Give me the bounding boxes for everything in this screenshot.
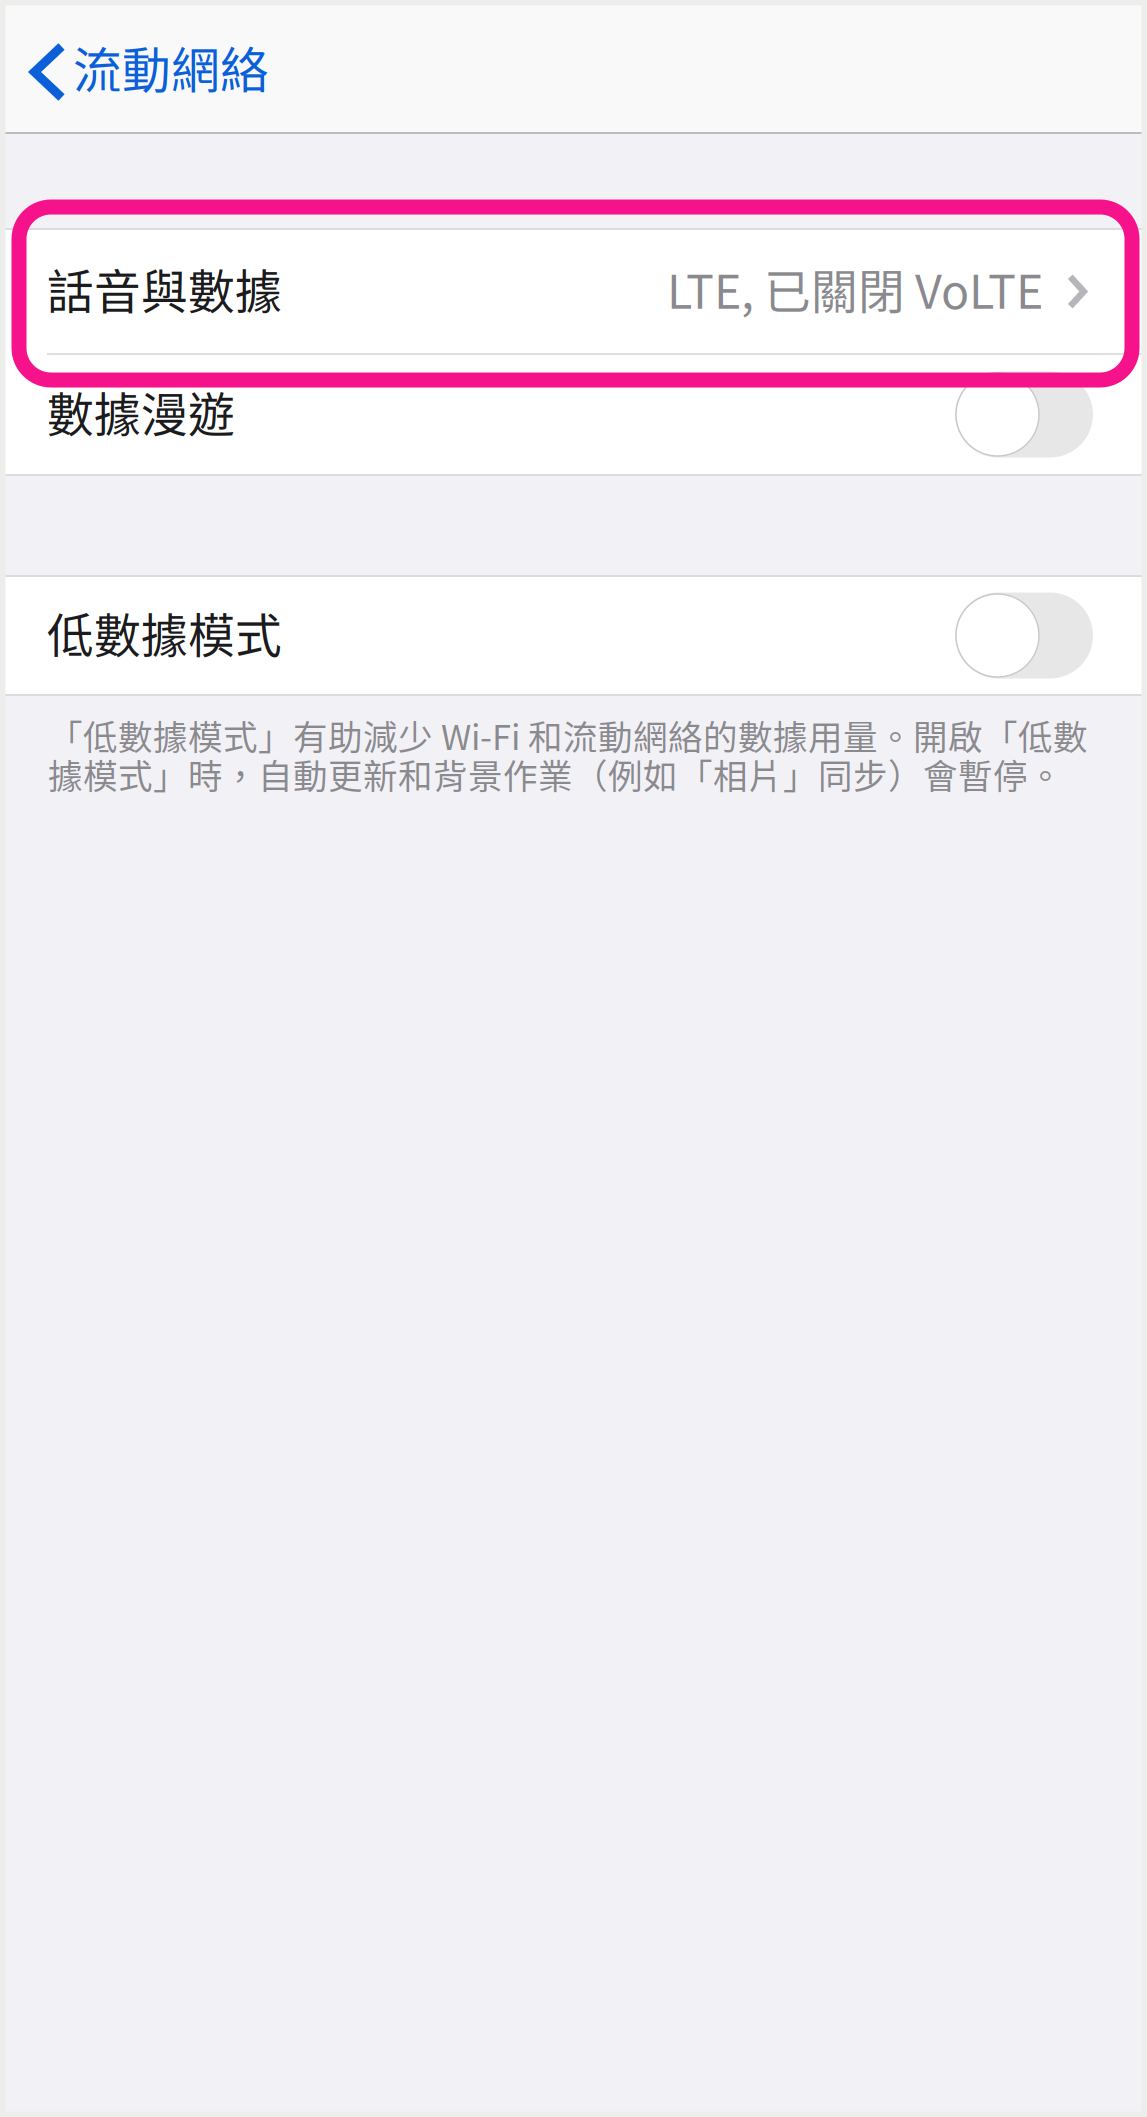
staticText: 話音與數據 — [47, 255, 282, 322]
staticText: LTE, 已關閉 VoLTE — [667, 255, 1043, 322]
staticText: 低數據模式 — [47, 599, 282, 666]
button[interactable]: 流動網絡 — [0, 0, 1147, 132]
staticText: 數據漫遊 — [47, 378, 235, 445]
staticText: 「低數據模式」有助減少 Wi-Fi 和流動網絡的數據用量。開啟「低數據模式」時，… — [48, 710, 1088, 799]
button[interactable]: 低數據模式 — [955, 592, 1093, 678]
staticText: 流動網絡 — [73, 32, 269, 102]
button[interactable]: 話音與數據 — [0, 230, 1147, 353]
button[interactable]: 數據漫遊 — [955, 371, 1093, 457]
